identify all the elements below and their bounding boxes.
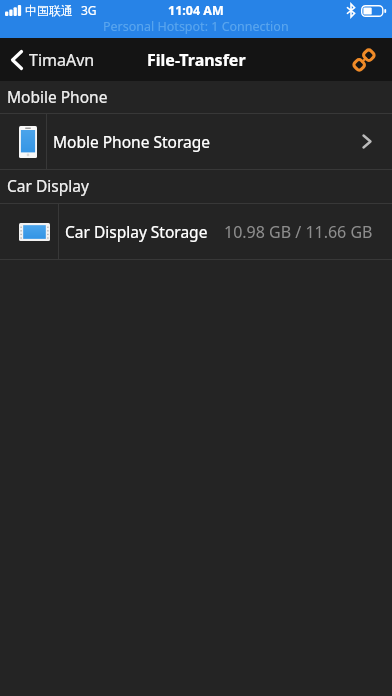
staticText: Personal Hotspot: 1 Connection [103,18,289,35]
staticText: Car Display Storage [65,221,208,242]
staticText: TimaAvn [29,49,95,71]
button[interactable]: Link [344,38,392,81]
button[interactable]: TimaAvn [0,38,105,81]
staticText: 10.98 GB / 11.66 GB [224,221,373,243]
staticText: Mobile Phone [7,86,108,107]
button[interactable]: Car Display Storage [0,204,392,259]
staticText: 3G [81,2,97,18]
button[interactable]: Moble Phone Storage [0,114,392,169]
staticText: Moble Phone Storage [53,131,210,152]
staticText: 中国联通 [25,3,73,18]
staticText: 11:04 AM [168,2,224,19]
staticText: File-Transfer [147,49,246,71]
staticText: Car Display [7,175,89,196]
